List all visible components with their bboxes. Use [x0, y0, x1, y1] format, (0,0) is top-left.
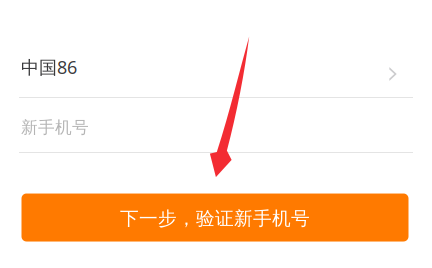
staticText: 新手机号	[21, 117, 89, 138]
staticText: 中国86	[21, 55, 77, 79]
button[interactable]: 中国86	[0, 41, 432, 97]
button[interactable]: 新手机号	[0, 97, 432, 152]
button[interactable]: 下一步，验证新手机号	[21, 193, 408, 241]
staticText: 下一步，验证新手机号	[120, 207, 310, 230]
